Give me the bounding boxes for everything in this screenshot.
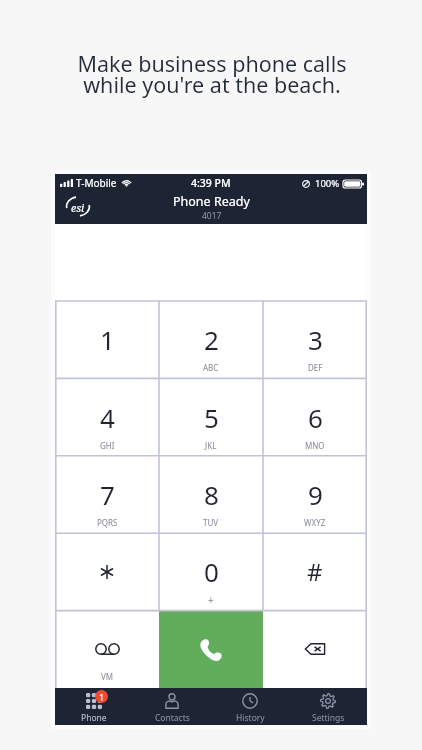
staticText: 100% — [315, 177, 340, 190]
staticText: 4017 — [202, 210, 222, 222]
button[interactable]: Star — [55, 534, 159, 611]
staticText: 0 — [204, 554, 219, 589]
staticText: MNO — [305, 440, 325, 451]
button[interactable]: 4 — [55, 379, 159, 457]
staticText: Settings — [312, 712, 345, 724]
staticText: 6 — [308, 400, 323, 435]
button[interactable]: 5 — [159, 379, 263, 457]
staticText: Phone Ready — [173, 193, 250, 210]
button[interactable]: 1 — [55, 301, 159, 379]
button[interactable]: Phone — [55, 688, 133, 725]
staticText: # — [307, 555, 323, 588]
button[interactable]: # — [263, 534, 367, 611]
staticText: esi — [71, 201, 85, 215]
staticText: Make business phone calls while you're a… — [77, 49, 347, 100]
staticText: + — [208, 593, 214, 607]
staticText: 5 — [204, 400, 219, 435]
staticText: PQRS — [97, 517, 118, 528]
staticText: History — [236, 712, 265, 724]
staticText: 7 — [100, 477, 115, 512]
staticText: DEF — [308, 362, 323, 373]
button[interactable]: 3 — [263, 301, 367, 379]
button[interactable]: Backspace — [263, 611, 367, 688]
button[interactable]: Call — [159, 611, 263, 688]
staticText: T-Mobile — [76, 176, 117, 190]
staticText: 1 — [100, 322, 115, 357]
button[interactable]: Settings — [289, 688, 367, 725]
button[interactable]: 9 — [263, 457, 367, 534]
staticText: 4 — [100, 400, 115, 435]
button[interactable]: 2 — [159, 301, 263, 379]
staticText: TUV — [203, 517, 219, 528]
other: Call — [199, 638, 223, 662]
button[interactable]: 7 — [55, 457, 159, 534]
button[interactable]: Contacts — [133, 688, 211, 725]
staticText: 8 — [204, 477, 219, 512]
staticText: 1 — [99, 691, 105, 703]
button[interactable]: History — [211, 688, 289, 725]
staticText: 2 — [204, 322, 219, 357]
staticText: GHI — [100, 440, 115, 451]
button[interactable]: Voicemail — [55, 611, 159, 688]
staticText: VM — [101, 671, 114, 682]
staticText: 4:39 PM — [191, 176, 231, 190]
staticText: Phone — [81, 712, 107, 724]
button[interactable]: 6 — [263, 379, 367, 457]
button[interactable]: 8 — [159, 457, 263, 534]
other: Star — [100, 565, 114, 579]
button[interactable]: 0 — [159, 534, 263, 611]
staticText: ABC — [203, 362, 219, 373]
staticText: 3 — [308, 322, 323, 357]
staticText: 9 — [308, 477, 323, 512]
staticText: Contacts — [155, 712, 190, 724]
staticText: JKL — [205, 440, 217, 451]
staticText: WXYZ — [304, 517, 326, 528]
